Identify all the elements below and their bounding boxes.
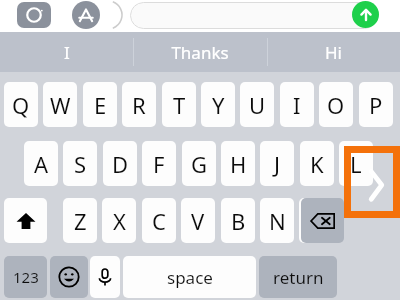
button[interactable]: B: [221, 198, 255, 243]
staticText: Y: [212, 90, 225, 120]
button[interactable]: W: [43, 82, 77, 127]
button[interactable]: C: [142, 198, 176, 243]
button[interactable]: Q: [4, 82, 38, 127]
staticText: B: [231, 206, 246, 236]
staticText: K: [310, 149, 324, 179]
staticText: Hi: [325, 41, 342, 64]
button[interactable]: Send: [352, 1, 379, 28]
staticText: D: [112, 149, 129, 179]
button[interactable]: Dictation: [90, 256, 120, 298]
staticText: Z: [74, 206, 87, 236]
button[interactable]: return: [259, 256, 337, 298]
staticText: Thanks: [171, 41, 229, 64]
button[interactable]: P: [359, 82, 393, 127]
button[interactable]: [130, 2, 378, 29]
staticText: U: [249, 90, 266, 120]
button[interactable]: 123: [4, 256, 47, 298]
staticText: 123: [13, 267, 39, 287]
button[interactable]: T: [162, 82, 196, 127]
staticText: L: [350, 149, 362, 179]
button[interactable]: A: [24, 141, 58, 186]
staticText: return: [273, 266, 324, 289]
staticText: F: [153, 149, 165, 179]
staticText: X: [113, 206, 126, 236]
staticText: H: [230, 149, 247, 179]
button[interactable]: Y: [201, 82, 235, 127]
button[interactable]: D: [103, 141, 137, 186]
button[interactable]: F: [142, 141, 176, 186]
button[interactable]: K: [300, 141, 334, 186]
button[interactable]: X: [102, 198, 136, 243]
staticText: N: [269, 206, 286, 236]
staticText: P: [369, 90, 383, 120]
staticText: T: [173, 90, 186, 120]
staticText: O: [327, 90, 345, 120]
button[interactable]: R: [122, 82, 156, 127]
button[interactable]: E: [83, 82, 117, 127]
staticText: C: [152, 206, 166, 236]
button[interactable]: G: [182, 141, 216, 186]
button[interactable]: L: [339, 141, 373, 186]
button[interactable]: Hi: [267, 32, 400, 72]
staticText: A: [34, 149, 49, 179]
staticText: space: [167, 266, 213, 289]
button[interactable]: Shift: [4, 198, 47, 243]
button[interactable]: Emoji: [50, 256, 88, 298]
button[interactable]: Camera: [17, 2, 51, 28]
button[interactable]: space: [123, 256, 256, 298]
button[interactable]: N: [260, 198, 294, 243]
staticText: V: [191, 206, 205, 236]
staticText: Q: [12, 90, 30, 120]
button[interactable]: O: [319, 82, 353, 127]
button[interactable]: I: [280, 82, 314, 127]
button[interactable]: H: [221, 141, 255, 186]
staticText: J: [274, 149, 281, 179]
staticText: G: [191, 149, 208, 179]
button[interactable]: I: [0, 32, 133, 72]
button[interactable]: Z: [63, 198, 97, 243]
button[interactable]: App Store: [72, 1, 100, 29]
staticText: M: [306, 206, 326, 236]
staticText: I: [64, 41, 70, 64]
button[interactable]: U: [240, 82, 274, 127]
staticText: W: [50, 90, 71, 120]
staticText: R: [132, 90, 146, 120]
button[interactable]: S: [63, 141, 97, 186]
button[interactable]: V: [181, 198, 215, 243]
button[interactable]: Backspace: [301, 198, 344, 243]
button[interactable]: J: [260, 141, 294, 186]
staticText: S: [74, 149, 87, 179]
staticText: I: [293, 90, 301, 120]
staticText: E: [94, 90, 107, 120]
button[interactable]: Thanks: [133, 32, 266, 72]
button[interactable]: M: [299, 198, 333, 243]
